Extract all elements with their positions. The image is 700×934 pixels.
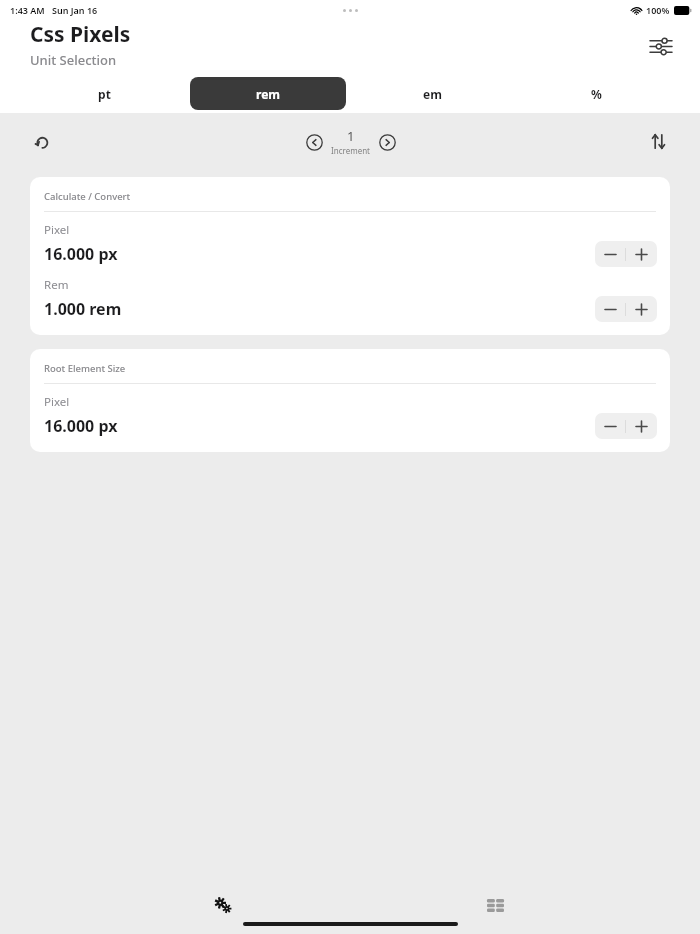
staticText: 1 bbox=[347, 127, 355, 145]
button[interactable]: Decrease bbox=[595, 241, 625, 267]
staticText: Root Element Size bbox=[44, 362, 126, 375]
staticText: % bbox=[591, 86, 602, 102]
staticText: Pixel bbox=[44, 394, 70, 410]
staticText: Calculate / Convert bbox=[44, 190, 131, 203]
staticText: Rem bbox=[44, 277, 69, 293]
staticText: Sun Jan 16 bbox=[52, 4, 98, 16]
staticText: 16.000 px bbox=[44, 243, 595, 265]
staticText: 100% bbox=[646, 4, 670, 16]
staticText: Pixel bbox=[44, 222, 70, 238]
button[interactable]: Settings bbox=[644, 29, 678, 63]
staticText: pt bbox=[98, 86, 111, 102]
staticText: 1:43 AM bbox=[10, 4, 45, 16]
staticText: Unit Selection bbox=[30, 51, 117, 69]
staticText: 1.000 rem bbox=[44, 298, 595, 320]
button[interactable]: pt bbox=[26, 77, 182, 110]
button[interactable]: rem bbox=[190, 77, 346, 110]
button[interactable]: % bbox=[518, 77, 674, 110]
staticText: Css Pixels bbox=[30, 20, 131, 49]
staticText: rem bbox=[256, 86, 280, 102]
staticText: Increment bbox=[331, 145, 370, 156]
button[interactable]: Decrease bbox=[595, 296, 625, 322]
staticText: em bbox=[423, 86, 442, 102]
button[interactable]: Decrease bbox=[595, 413, 625, 439]
button[interactable]: Swap units bbox=[642, 125, 674, 157]
button[interactable]: Table view bbox=[480, 890, 510, 920]
button[interactable]: em bbox=[354, 77, 510, 110]
button[interactable]: Increase bbox=[626, 296, 657, 322]
button[interactable]: Increase bbox=[626, 413, 657, 439]
staticText: 16.000 px bbox=[44, 415, 595, 437]
button[interactable]: Previous increment bbox=[304, 132, 324, 152]
button[interactable]: Settings bbox=[208, 890, 238, 920]
button[interactable]: Undo bbox=[26, 125, 58, 157]
button[interactable]: Increase bbox=[626, 241, 657, 267]
button[interactable]: Next increment bbox=[377, 132, 397, 152]
